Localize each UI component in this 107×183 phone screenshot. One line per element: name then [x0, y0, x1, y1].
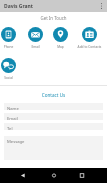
button[interactable]: Back	[16, 168, 30, 183]
staticText: Davis Grant	[4, 3, 33, 10]
staticText: Email	[22, 45, 49, 49]
button[interactable]: Recent apps	[75, 168, 89, 183]
button[interactable]: Map	[47, 27, 74, 49]
staticText: Message	[7, 139, 25, 145]
staticText: Tel	[7, 126, 13, 130]
button[interactable]: Social	[0, 58, 22, 80]
staticText: Social	[0, 76, 22, 80]
staticText: Name	[7, 106, 19, 110]
button[interactable]: Home	[47, 168, 61, 183]
button[interactable]: Add to Contacts	[76, 27, 103, 49]
staticText: Phone	[0, 45, 22, 49]
button[interactable]: Name	[4, 103, 103, 110]
button[interactable]: More options	[96, 0, 107, 12]
staticText: Add to Contacts	[76, 45, 103, 49]
button[interactable]: Tel	[4, 123, 103, 130]
button[interactable]: Message	[4, 136, 103, 160]
staticText: Get In Touch	[0, 15, 107, 21]
button[interactable]: Phone	[0, 27, 22, 49]
staticText: Email	[7, 116, 18, 120]
button[interactable]: Email	[4, 113, 103, 120]
staticText: Contact Us	[0, 92, 107, 98]
button[interactable]: Email	[22, 27, 49, 49]
staticText: Map	[47, 45, 74, 49]
